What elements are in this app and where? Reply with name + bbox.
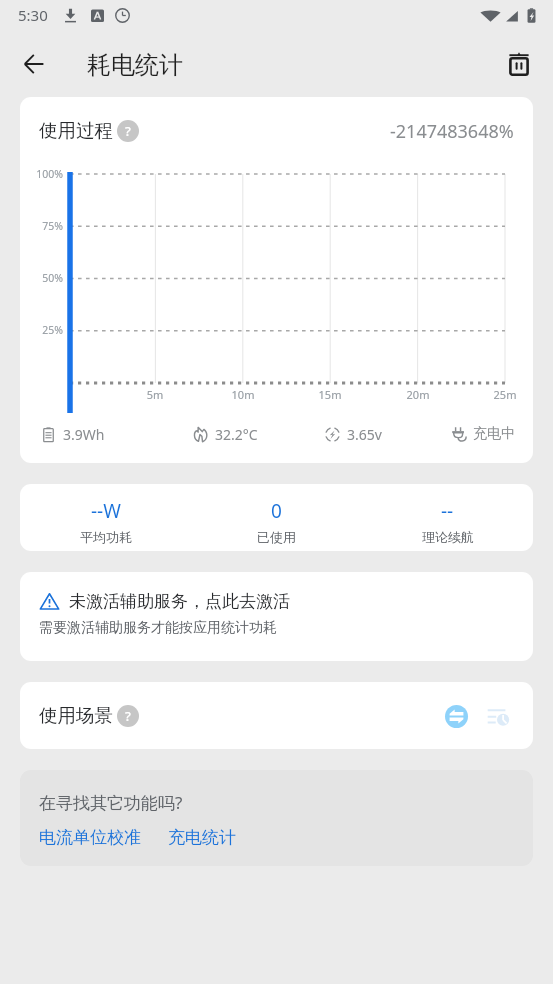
button[interactable]: -- <box>362 484 533 551</box>
staticText: --W <box>91 498 121 524</box>
button[interactable]: 0 <box>191 484 362 551</box>
staticText: 15m <box>310 387 350 402</box>
button[interactable]: Help <box>117 120 139 142</box>
staticText: 0 <box>271 498 282 524</box>
staticText: 需要激活辅助服务才能按应用统计功耗 <box>39 619 277 637</box>
staticText: 在寻找其它功能吗? <box>39 791 183 814</box>
staticText: 电流单位校准 <box>39 827 141 848</box>
staticText: 5m <box>135 387 175 402</box>
staticText: 理论续航 <box>422 529 474 545</box>
staticText: 3.65v <box>347 425 382 444</box>
staticText: 平均功耗 <box>80 529 132 545</box>
button[interactable]: Delete <box>499 43 539 83</box>
staticText: 32.2°C <box>215 425 258 444</box>
button[interactable]: History <box>483 701 513 731</box>
button[interactable]: Sort <box>441 701 471 731</box>
button[interactable]: 充电统计 <box>168 827 236 848</box>
staticText: -- <box>441 498 454 524</box>
staticText: 使用场景 <box>39 704 113 727</box>
staticText: 已使用 <box>257 529 296 545</box>
staticText: ? <box>125 122 131 140</box>
staticText: 10m <box>223 387 263 402</box>
staticText: 未激活辅助服务，点此去激活 <box>69 591 290 612</box>
staticText: 50% <box>20 271 63 285</box>
staticText: 100% <box>20 167 63 181</box>
staticText: -2147483648% <box>390 119 514 144</box>
staticText: 充电中 <box>473 425 515 443</box>
staticText: 使用过程 <box>39 119 113 142</box>
staticText: 充电统计 <box>168 827 236 848</box>
button[interactable]: 未激活辅助服务，点此去激活 <box>20 572 533 661</box>
staticText: 5:30 <box>18 5 48 25</box>
button[interactable]: 电流单位校准 <box>39 827 141 848</box>
staticText: 耗电统计 <box>87 50 183 80</box>
staticText: ? <box>125 707 131 725</box>
staticText: 20m <box>398 387 438 402</box>
button[interactable]: --W <box>20 484 191 551</box>
staticText: 25m <box>485 387 525 402</box>
staticText: 75% <box>20 219 63 233</box>
button[interactable]: Back <box>14 44 54 84</box>
button[interactable]: Help <box>117 705 139 727</box>
staticText: 25% <box>20 323 63 337</box>
staticText: 3.9Wh <box>63 425 105 444</box>
